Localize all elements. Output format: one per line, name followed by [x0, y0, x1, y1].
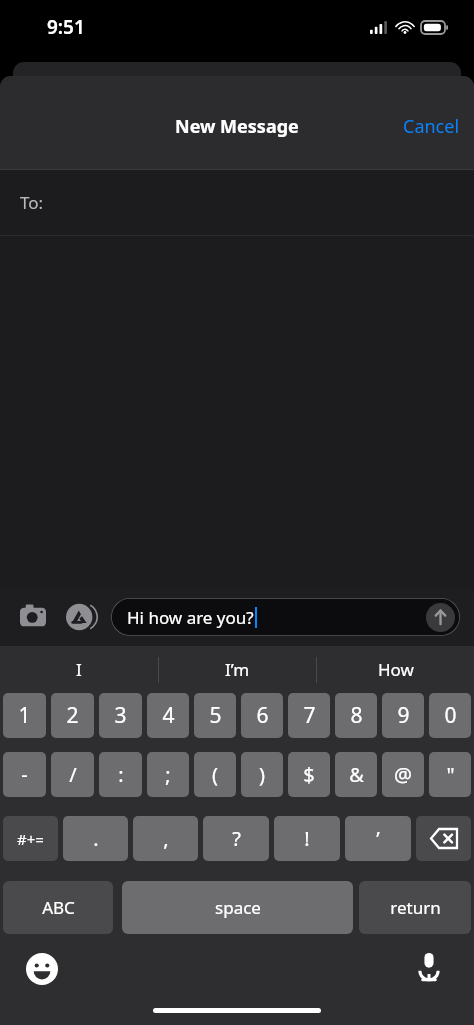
button[interactable]: Dictation [411, 949, 447, 985]
staticText: ? [232, 825, 241, 852]
button[interactable]: ? [203, 816, 269, 861]
button[interactable]: . [63, 816, 128, 861]
button[interactable]: @ [382, 752, 424, 797]
button[interactable]: & [335, 752, 377, 797]
staticText: $ [303, 761, 315, 788]
button[interactable]: How [317, 646, 474, 693]
button[interactable]: I’m [159, 646, 316, 693]
button[interactable]: 1 [3, 693, 46, 738]
button[interactable]: ! [274, 816, 340, 861]
staticText: / [69, 761, 77, 788]
staticText: To: [20, 191, 44, 214]
button[interactable]: Emoji [24, 951, 60, 987]
staticText: I [76, 658, 82, 681]
button[interactable]: 6 [241, 693, 283, 738]
button[interactable]: 8 [335, 693, 377, 738]
staticText: 4 [162, 701, 175, 730]
button[interactable]: 4 [147, 693, 189, 738]
staticText: , [163, 825, 169, 852]
button[interactable]: To: [0, 170, 474, 235]
button[interactable]: Delete [416, 816, 471, 861]
staticText: ! [304, 825, 310, 852]
staticText: " [446, 761, 455, 788]
button[interactable]: Apps [62, 598, 100, 636]
button[interactable]: #+= [3, 816, 58, 861]
button[interactable]: ABC [3, 881, 113, 934]
staticText: 1 [18, 701, 31, 730]
staticText: : [118, 761, 124, 788]
button[interactable]: 9 [382, 693, 424, 738]
button[interactable]: ( [194, 752, 236, 797]
button[interactable]: Send [426, 603, 455, 632]
staticText: - [21, 761, 28, 788]
staticText: I’m [225, 658, 250, 681]
staticText: 8 [350, 701, 363, 730]
button[interactable]: Cancel [389, 106, 474, 147]
button[interactable]: $ [288, 752, 330, 797]
button[interactable]: , [133, 816, 198, 861]
staticText: space [215, 896, 261, 919]
staticText: ( [212, 761, 218, 788]
button[interactable]: Hi how are you? [111, 598, 460, 636]
button[interactable]: ; [147, 752, 189, 797]
staticText: How [378, 658, 414, 681]
staticText: ABC [42, 896, 75, 919]
button[interactable]: 7 [288, 693, 330, 738]
staticText: Hi how are you? [127, 606, 254, 629]
button[interactable]: 0 [429, 693, 471, 738]
button[interactable]: 3 [99, 693, 142, 738]
button[interactable]: / [51, 752, 94, 797]
staticText: Cancel [403, 114, 460, 139]
staticText: 3 [114, 701, 127, 730]
staticText: 9 [397, 701, 410, 730]
staticText: New Message [175, 114, 299, 139]
button[interactable]: " [429, 752, 471, 797]
button[interactable]: I [0, 646, 158, 693]
button[interactable]: ) [241, 752, 283, 797]
button[interactable]: return [359, 881, 471, 934]
staticText: 7 [303, 701, 316, 730]
staticText: ; [165, 761, 171, 788]
button[interactable]: 2 [51, 693, 94, 738]
button[interactable]: space [122, 881, 353, 934]
staticText: @ [394, 761, 412, 788]
staticText: ) [259, 761, 265, 788]
staticText: 5 [209, 701, 222, 730]
button[interactable]: - [3, 752, 46, 797]
staticText: #+= [17, 829, 44, 849]
button[interactable]: 5 [194, 693, 236, 738]
button[interactable]: : [99, 752, 142, 797]
button[interactable]: ’ [345, 816, 411, 861]
staticText: return [390, 896, 441, 919]
staticText: 2 [66, 701, 79, 730]
staticText: ’ [376, 825, 380, 852]
staticText: & [349, 761, 364, 788]
staticText: 0 [444, 701, 457, 730]
staticText: 6 [256, 701, 269, 730]
button[interactable]: Camera [14, 598, 52, 636]
staticText: . [93, 825, 99, 852]
staticText: 9:51 [47, 14, 85, 40]
